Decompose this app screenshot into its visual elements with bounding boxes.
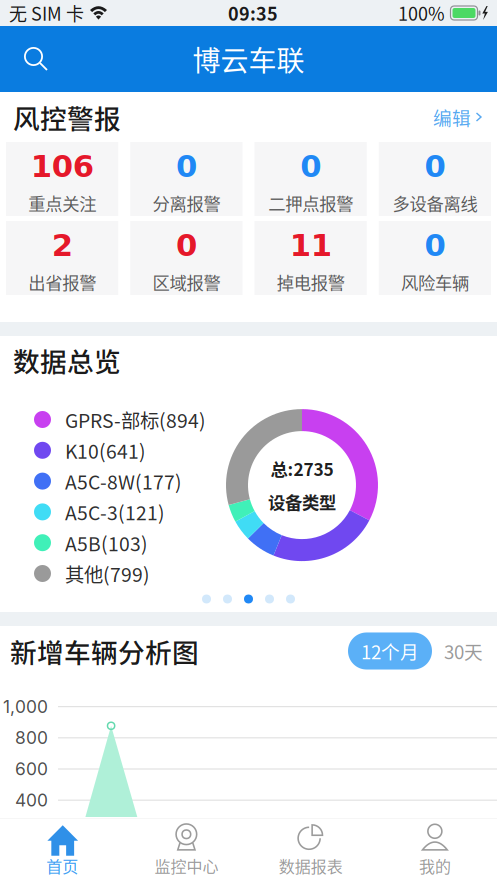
staticText: 重点关注 [28, 190, 96, 215]
staticText: 无 SIM 卡 [9, 0, 84, 26]
button[interactable]: 0 [379, 142, 491, 216]
staticText: A5B(103) [65, 529, 148, 557]
staticText: 出省报警 [28, 269, 96, 294]
staticText: 1,000 [3, 696, 48, 717]
button[interactable]: 12个月 [348, 632, 432, 669]
staticText: 600 [15, 758, 48, 779]
button[interactable]: Search [0, 27, 66, 91]
button[interactable]: 编辑 [433, 95, 483, 138]
button[interactable]: 2 [6, 221, 118, 295]
staticText: 我的 [419, 854, 451, 877]
staticText: 监控中心 [154, 854, 218, 877]
staticText: 0 [176, 228, 197, 263]
staticText: 数据报表 [279, 854, 343, 877]
button[interactable]: 30天 [432, 632, 483, 669]
staticText: 11 [290, 228, 332, 263]
staticText: 区域报警 [152, 269, 220, 294]
staticText: 30天 [444, 637, 483, 664]
staticText: 首页 [46, 854, 78, 877]
staticText: 编辑 [433, 103, 471, 130]
button[interactable]: 0 [379, 221, 491, 295]
button[interactable]: 11 [254, 221, 367, 295]
staticText: 二押点报警 [268, 190, 353, 215]
staticText: 设备类型 [268, 489, 336, 514]
staticText: 2 [52, 228, 73, 263]
staticText: 风控警报 [13, 98, 121, 136]
staticText: 12个月 [361, 637, 419, 664]
staticText: 其他(799) [65, 559, 150, 587]
staticText: 总:2735 [270, 456, 333, 481]
staticText: 博云车联 [192, 39, 304, 79]
button[interactable]: 0 [130, 221, 242, 295]
button[interactable]: 监控中心 [124, 819, 248, 883]
staticText: 风险车辆 [401, 269, 469, 294]
staticText: GPRS-部标(894) [65, 405, 206, 433]
staticText: 0 [176, 149, 197, 184]
staticText: 800 [15, 727, 48, 748]
button[interactable]: 0 [254, 142, 367, 216]
button[interactable]: 首页 [0, 819, 124, 883]
button[interactable]: 0 [130, 142, 242, 216]
staticText: K10(641) [65, 436, 146, 464]
staticText: 分离报警 [152, 190, 220, 215]
staticText: A5C-3(121) [65, 498, 165, 526]
staticText: 09:35 [228, 0, 278, 26]
staticText: 400 [15, 790, 48, 811]
staticText: A5C-8W(177) [65, 467, 182, 495]
staticText: 数据总览 [13, 341, 121, 379]
staticText: 0 [424, 149, 445, 184]
button[interactable]: 我的 [373, 819, 497, 883]
staticText: 掉电报警 [277, 269, 345, 294]
staticText: 100% [398, 0, 445, 26]
staticText: 0 [424, 228, 445, 263]
button[interactable]: 106 [6, 142, 118, 216]
staticText: 多设备离线 [392, 190, 477, 215]
staticText: 新增车辆分析图 [10, 632, 199, 670]
staticText: 106 [31, 149, 94, 184]
button[interactable]: 数据报表 [248, 819, 373, 883]
staticText: 0 [300, 149, 321, 184]
